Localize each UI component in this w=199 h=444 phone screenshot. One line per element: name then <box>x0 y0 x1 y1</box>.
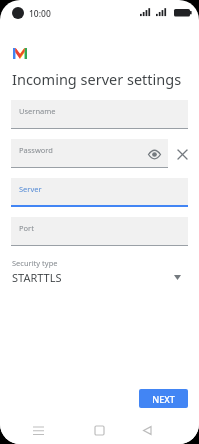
staticText: Username <box>19 106 56 116</box>
button[interactable]: Server <box>11 178 188 207</box>
staticText: Incoming server settings <box>12 69 182 89</box>
staticText: Security type <box>12 258 58 268</box>
button[interactable]: Port <box>11 217 188 246</box>
button[interactable]: Clear password <box>173 145 191 163</box>
staticText: Password <box>19 145 53 155</box>
staticText: Server <box>19 184 42 194</box>
staticText: 10:00 <box>29 8 51 20</box>
button[interactable]: Password <box>11 139 168 168</box>
button[interactable]: Username <box>11 100 188 129</box>
staticText: STARTTLS <box>12 270 62 285</box>
button[interactable]: Show password <box>146 146 162 162</box>
button[interactable]: Security type <box>0 258 199 292</box>
staticText: Port <box>19 223 34 233</box>
staticText: NEXT <box>152 393 175 405</box>
button[interactable]: Back <box>122 416 172 444</box>
button[interactable]: Recent apps <box>0 416 76 444</box>
button[interactable]: NEXT <box>139 389 188 408</box>
button[interactable]: Home <box>76 416 122 444</box>
